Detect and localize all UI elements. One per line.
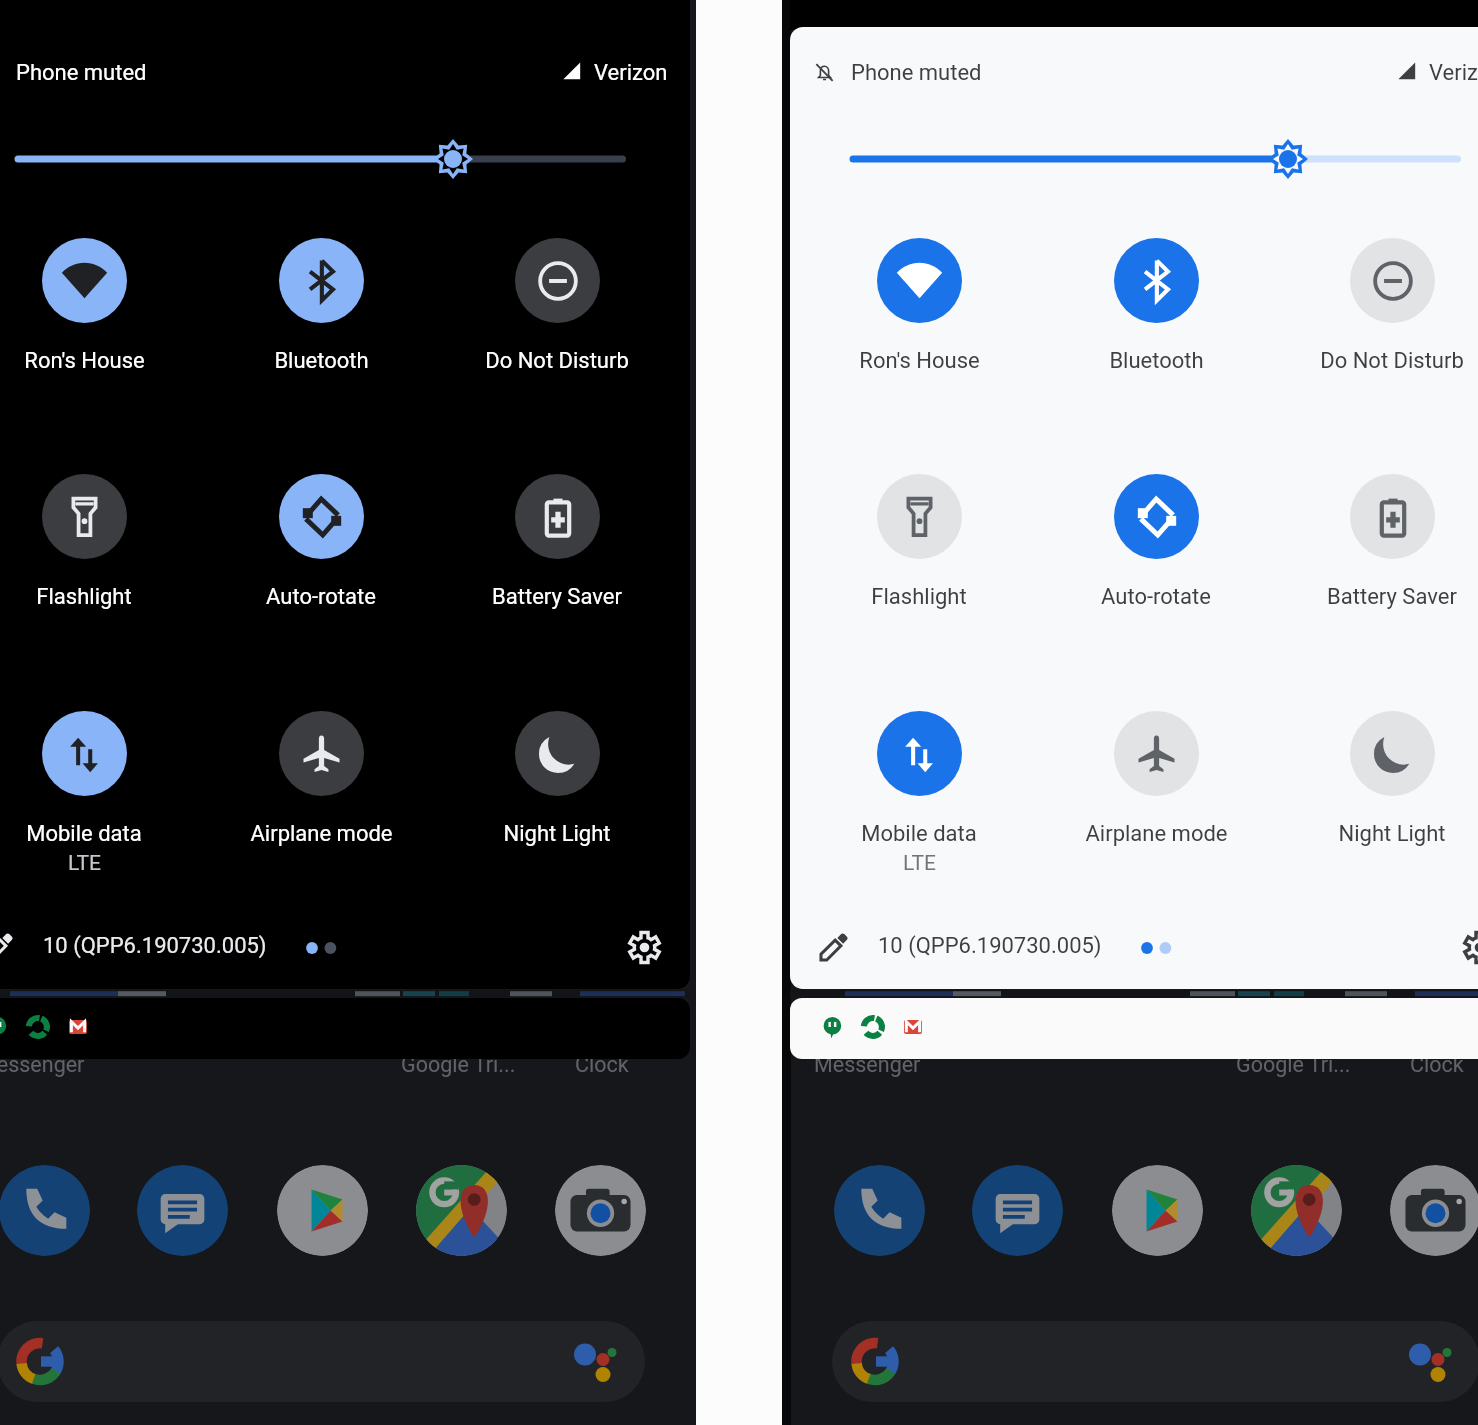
staticText: Battery Saver	[1327, 584, 1457, 610]
button[interactable]: Play Store	[1112, 1165, 1203, 1256]
button[interactable]: Flashlight	[0, 474, 200, 610]
button[interactable]: Night Light	[441, 711, 673, 847]
button[interactable]: Settings	[1463, 931, 1478, 964]
staticText: Mobile data	[861, 821, 977, 847]
button[interactable]: Messages	[137, 1165, 228, 1256]
staticText: Google Tri...	[401, 1052, 516, 1077]
staticText: Auto-rotate	[1101, 584, 1211, 610]
button[interactable]: Notifications	[790, 998, 1478, 1059]
button[interactable]: Phone	[0, 1165, 90, 1256]
button[interactable]: Maps	[416, 1165, 507, 1256]
button[interactable]: Mobile data	[803, 711, 1035, 876]
staticText: Do Not Disturb	[1320, 348, 1464, 374]
button[interactable]: Brightness	[790, 132, 1478, 186]
staticText: Clock	[1410, 1052, 1464, 1077]
staticText: LTE	[903, 851, 936, 876]
button[interactable]: Play Store	[277, 1165, 368, 1256]
button[interactable]: Flashlight	[803, 474, 1035, 610]
button[interactable]: Brightness	[0, 132, 690, 186]
button[interactable]: Messages	[972, 1165, 1063, 1256]
button[interactable]: Do Not Disturb	[1276, 238, 1478, 374]
button[interactable]: Edit tiles	[0, 931, 15, 964]
staticText: 10 (QPP6.190730.005)	[43, 933, 267, 959]
staticText: Auto-rotate	[266, 584, 376, 610]
staticText: Flashlight	[871, 584, 967, 610]
button[interactable]: Phone	[834, 1165, 925, 1256]
button[interactable]: Notifications	[0, 998, 690, 1059]
staticText: Bluetooth	[274, 348, 369, 374]
button[interactable]: Auto-rotate	[205, 474, 437, 610]
other: Phone muted	[813, 61, 836, 84]
staticText: Do Not Disturb	[485, 348, 629, 374]
staticText: Mobile data	[26, 821, 142, 847]
staticText: Bluetooth	[1109, 348, 1204, 374]
button[interactable]: Mobile data	[0, 711, 200, 876]
staticText: 10 (QPP6.190730.005)	[878, 933, 1102, 959]
button[interactable]: Page 1 of 2	[300, 935, 350, 961]
staticText: Ron's House	[24, 348, 145, 374]
button[interactable]: Maps	[1251, 1165, 1342, 1256]
staticText: Night Light	[1338, 821, 1446, 847]
staticText: Battery Saver	[492, 584, 622, 610]
button[interactable]: Page 1 of 2	[1135, 935, 1185, 961]
staticText: Messenger	[0, 1052, 85, 1077]
staticText: Messenger	[814, 1052, 921, 1077]
button[interactable]: Battery Saver	[441, 474, 673, 610]
staticText: Phone muted	[16, 60, 147, 86]
button[interactable]: Search	[832, 1321, 1478, 1402]
button[interactable]: Search	[0, 1321, 645, 1402]
button[interactable]: Camera	[555, 1165, 646, 1256]
staticText: Airplane mode	[1085, 821, 1228, 847]
button[interactable]: Ron's House	[803, 238, 1035, 374]
button[interactable]: Battery Saver	[1276, 474, 1478, 610]
button[interactable]: Bluetooth	[1040, 238, 1272, 374]
staticText: LTE	[68, 851, 101, 876]
button[interactable]: Airplane mode	[1040, 711, 1272, 847]
button[interactable]: Airplane mode	[205, 711, 437, 847]
staticText: Ron's House	[859, 348, 980, 374]
staticText: Phone muted	[851, 60, 982, 86]
staticText: Verizon	[1429, 60, 1478, 86]
staticText: Airplane mode	[250, 821, 393, 847]
button[interactable]: Night Light	[1276, 711, 1478, 847]
staticText: Google Tri...	[1236, 1052, 1351, 1077]
button[interactable]: Ron's House	[0, 238, 200, 374]
button[interactable]: Edit tiles	[817, 931, 850, 964]
staticText: Clock	[575, 1052, 629, 1077]
staticText: Flashlight	[36, 584, 132, 610]
button[interactable]: Camera	[1390, 1165, 1478, 1256]
staticText: Night Light	[503, 821, 611, 847]
button[interactable]: Settings	[628, 931, 661, 964]
staticText: Verizon	[594, 60, 668, 86]
button[interactable]: Auto-rotate	[1040, 474, 1272, 610]
button[interactable]: Do Not Disturb	[441, 238, 673, 374]
button[interactable]: Bluetooth	[205, 238, 437, 374]
